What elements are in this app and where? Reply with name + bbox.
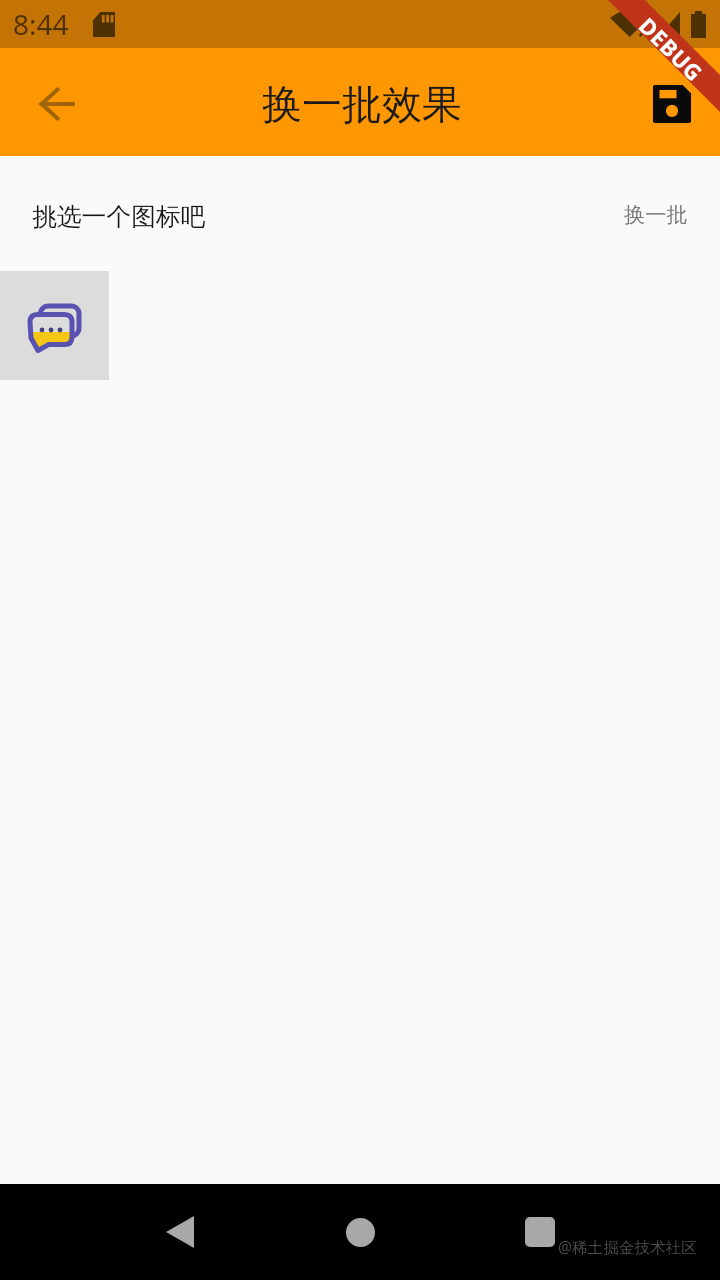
staticText: 挑选一个图标吧 — [32, 201, 206, 232]
button[interactable]: Recents — [450, 1184, 630, 1280]
button[interactable]: Chat icon — [0, 271, 109, 380]
staticText: 换一批效果 — [262, 79, 462, 129]
button[interactable]: Back — [9, 54, 105, 150]
button[interactable]: Back — [90, 1184, 270, 1280]
button[interactable]: Save — [624, 54, 720, 150]
button[interactable]: 换一批 — [592, 183, 720, 245]
button[interactable]: Home — [270, 1184, 450, 1280]
staticText: DEBUG — [633, 10, 710, 88]
staticText: @稀土掘金技术社区 — [558, 1236, 697, 1257]
staticText: 换一批 — [624, 202, 688, 229]
staticText: 8:44 — [13, 5, 69, 43]
